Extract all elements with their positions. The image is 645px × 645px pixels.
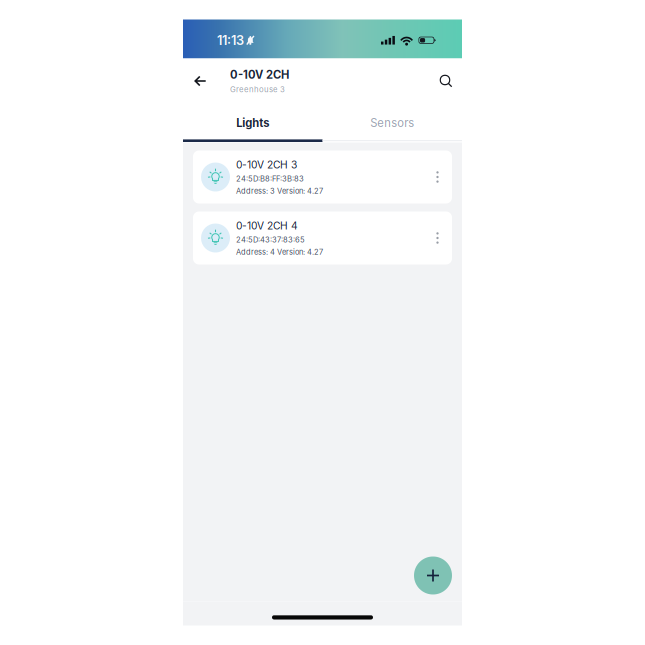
staticText: 24:5D:B8:FF:3B:83 bbox=[236, 174, 304, 183]
button[interactable]: 0-10V 2CH 4 bbox=[193, 211, 452, 264]
button[interactable]: Sensors bbox=[322, 104, 462, 142]
staticText: Address: 4 Version: 4.27 bbox=[236, 247, 323, 256]
button[interactable]: Add device bbox=[414, 556, 452, 594]
staticText: Sensors bbox=[370, 116, 414, 130]
staticText: Lights bbox=[236, 116, 269, 130]
staticText: 0-10V 2CH 3 bbox=[236, 158, 297, 171]
staticText: Address: 3 Version: 4.27 bbox=[236, 186, 323, 195]
staticText: Greenhouse 3 bbox=[230, 85, 285, 94]
button[interactable]: Back bbox=[185, 66, 215, 96]
staticText: 0-10V 2CH 4 bbox=[236, 219, 298, 232]
staticText: 0-10V 2CH bbox=[230, 68, 289, 81]
staticText: 11:13 bbox=[217, 32, 244, 48]
button[interactable]: Lights bbox=[183, 104, 322, 142]
button[interactable]: Search bbox=[431, 66, 461, 96]
staticText: 24:5D:43:37:83:65 bbox=[236, 235, 305, 244]
button[interactable]: 0-10V 2CH 3 bbox=[193, 150, 452, 203]
